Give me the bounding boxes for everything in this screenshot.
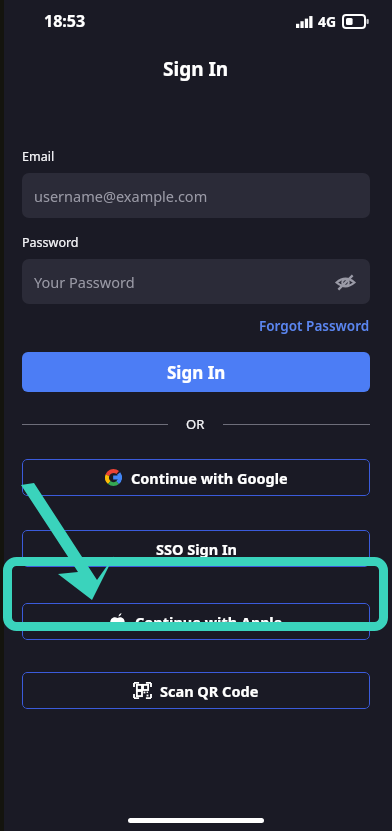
- staticText: Your Password: [34, 272, 135, 292]
- staticText: Sign In: [167, 361, 226, 384]
- button[interactable]: Sign In: [22, 352, 370, 392]
- button[interactable]: Continue with Google: [22, 459, 370, 496]
- staticText: username@example.com: [34, 186, 208, 206]
- staticText: 18:53: [44, 10, 86, 32]
- staticText: Forgot Password: [259, 317, 370, 335]
- staticText: SSO Sign In: [156, 539, 237, 559]
- staticText: 4G: [318, 12, 337, 31]
- staticText: Password: [22, 234, 79, 251]
- staticText: OR: [186, 415, 205, 433]
- button[interactable]: Show password: [330, 267, 360, 297]
- button[interactable]: Forgot Password: [259, 315, 392, 337]
- button[interactable]: Scan QR Code: [22, 672, 370, 709]
- button[interactable]: Continue with Apple: [22, 603, 370, 640]
- staticText: Email: [22, 148, 55, 165]
- staticText: Continue with Apple: [135, 612, 283, 632]
- staticText: Continue with Google: [131, 468, 288, 488]
- button[interactable]: Your Password: [22, 259, 370, 304]
- staticText: Scan QR Code: [160, 681, 259, 701]
- staticText: Sign In: [163, 56, 229, 82]
- button[interactable]: username@example.com: [22, 173, 370, 218]
- button[interactable]: SSO Sign In: [22, 530, 370, 567]
